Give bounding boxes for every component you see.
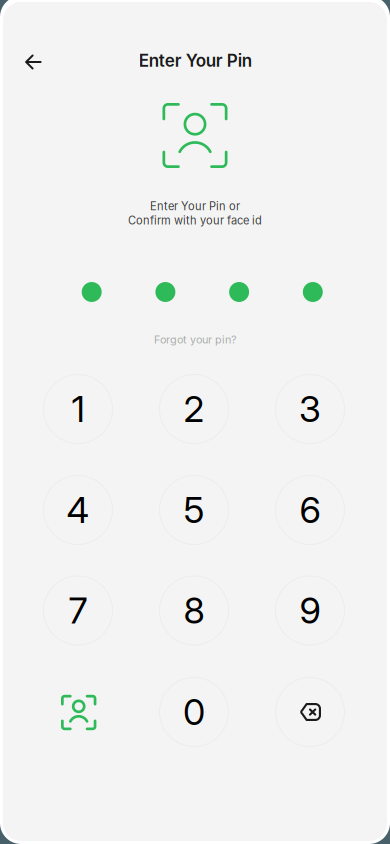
button[interactable]: 4 xyxy=(43,475,112,544)
staticText: 9 xyxy=(299,589,320,632)
staticText: Enter Your Pin or xyxy=(150,199,240,213)
button[interactable]: 2 xyxy=(159,374,228,443)
button[interactable]: 1 xyxy=(43,374,112,443)
staticText: 4 xyxy=(66,488,89,532)
staticText: 6 xyxy=(299,488,320,532)
staticText: 1 xyxy=(71,387,84,431)
button[interactable]: 8 xyxy=(159,576,228,645)
staticText: 8 xyxy=(183,589,204,632)
staticText: 7 xyxy=(68,589,87,632)
button[interactable]: 9 xyxy=(275,576,344,645)
button[interactable]: Delete xyxy=(275,677,344,746)
button[interactable]: Unlock with Face ID xyxy=(44,678,113,747)
button[interactable]: Back xyxy=(11,40,55,84)
button[interactable]: 5 xyxy=(159,475,228,544)
staticText: Confirm with your face id xyxy=(128,214,262,227)
staticText: 5 xyxy=(183,488,204,532)
staticText: 2 xyxy=(183,387,204,431)
button[interactable]: 7 xyxy=(43,576,112,645)
button[interactable]: 3 xyxy=(275,374,344,443)
staticText: Forgot your pin? xyxy=(154,333,237,346)
button[interactable]: 6 xyxy=(275,475,344,544)
button[interactable]: Forgot your pin? xyxy=(135,324,255,354)
staticText: 0 xyxy=(183,690,205,734)
button[interactable]: 0 xyxy=(159,677,228,746)
staticText: Enter Your Pin xyxy=(139,50,252,71)
staticText: 3 xyxy=(299,387,321,431)
